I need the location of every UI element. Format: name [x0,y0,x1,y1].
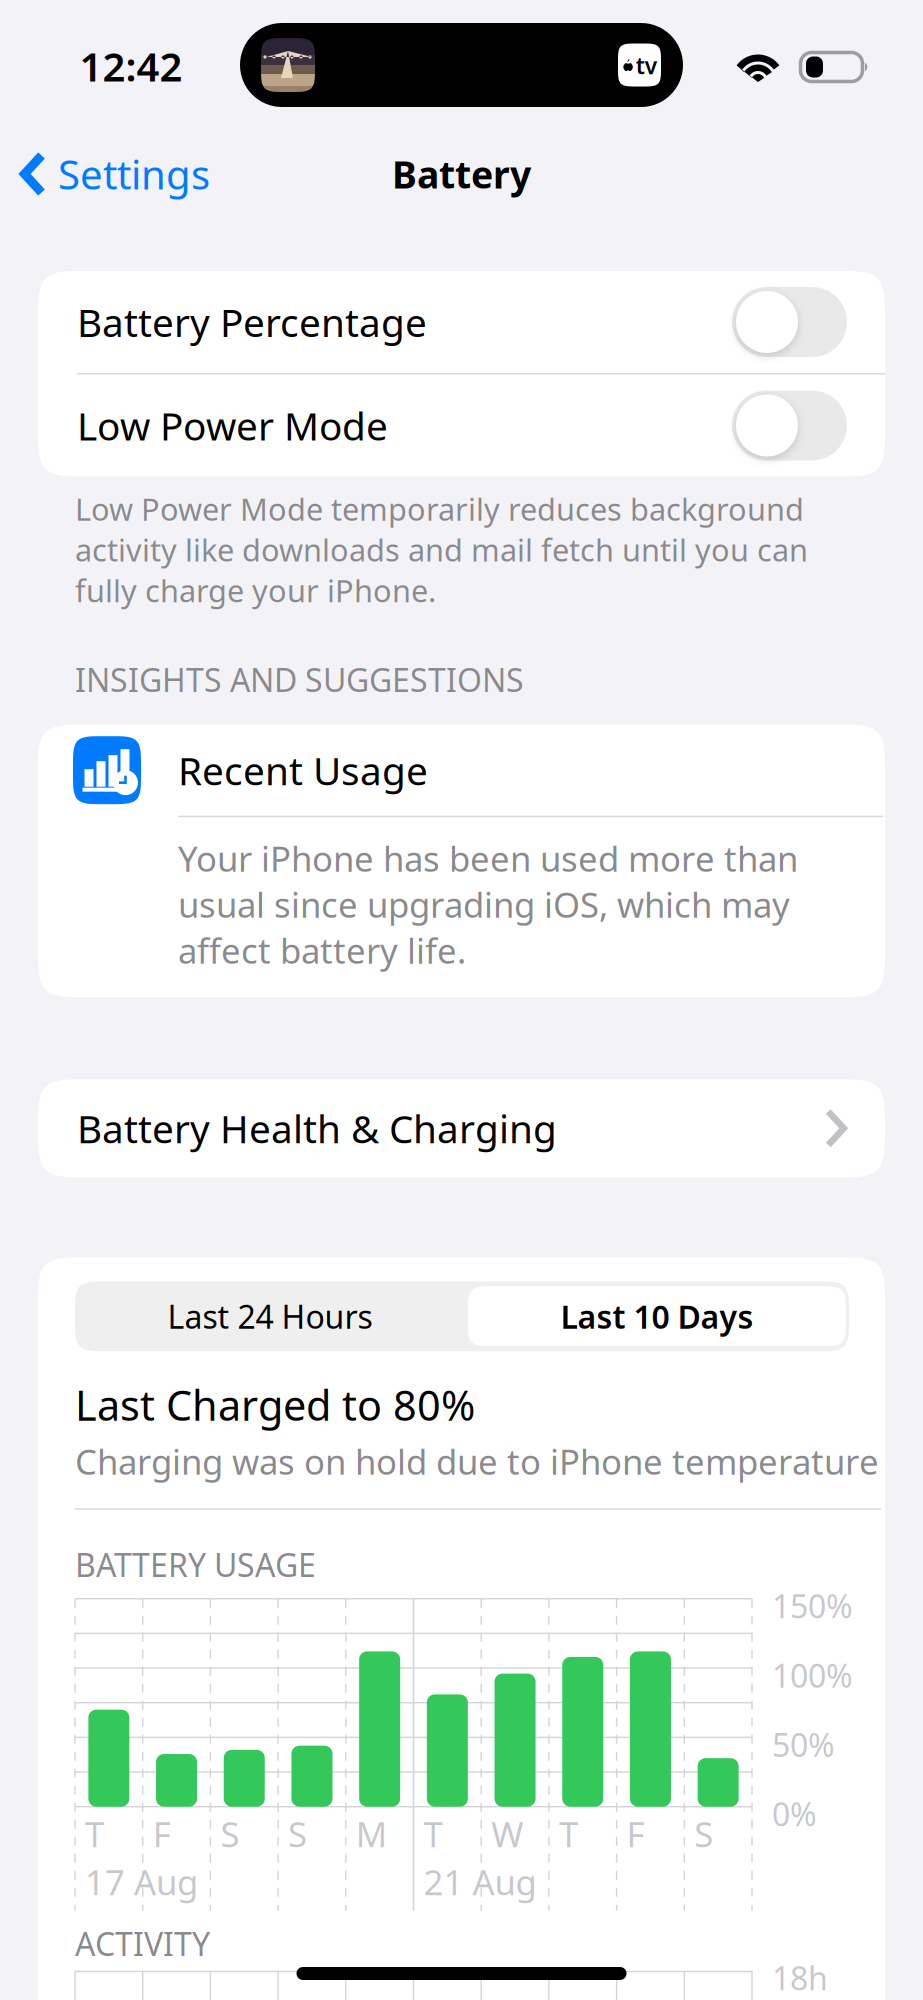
staticText: Low Power Mode temporarily reduces backg… [75,488,808,611]
staticText: BATTERY USAGE [75,1543,316,1586]
staticText: F [627,1811,645,1857]
staticText: INSIGHTS AND SUGGESTIONS [75,658,524,701]
staticText: F [153,1811,171,1857]
staticText: S [288,1811,307,1857]
button[interactable]: Battery Health & Charging [38,1079,885,1177]
staticText: Last 24 Hours [167,1295,372,1337]
staticText: Settings [58,147,210,200]
staticText: Low Power Mode [77,400,388,451]
staticText: Your iPhone has been used more than usua… [178,835,798,973]
staticText: 18h [772,1957,828,1999]
staticText: 21 Aug [423,1859,536,1905]
button[interactable]: Recent Usage [38,725,885,997]
staticText: Last Charged to 80% [75,1377,475,1432]
button[interactable]: Last 24 Hours [75,1281,465,1351]
staticText: ACTIVITY [75,1922,210,1965]
button[interactable]: Last 10 Days [465,1281,849,1351]
staticText: Battery Percentage [77,296,427,348]
staticText: Charging was on hold due to iPhone tempe… [75,1438,879,1484]
staticText: 17 Aug [85,1859,198,1905]
staticText: Recent Usage [178,744,428,796]
staticText: 150% [772,1585,853,1627]
button[interactable]: Settings [0,118,210,230]
staticText: M [356,1811,387,1857]
staticText: 100% [772,1654,853,1696]
staticText: T [85,1811,104,1857]
staticText: T [559,1811,578,1857]
staticText: S [220,1811,239,1857]
staticText: 50% [772,1723,835,1766]
staticText: 12:42 [79,39,182,92]
staticText: 0% [772,1793,817,1835]
button[interactable]: Low Power Mode [38,374,885,476]
staticText: Battery [392,149,531,199]
staticText: S [694,1811,713,1857]
staticText: Battery Health & Charging [77,1103,557,1154]
staticText: W [491,1811,523,1857]
staticText: Last 10 Days [560,1295,753,1337]
staticText: T [423,1811,442,1857]
staticText: tv [636,50,657,80]
button[interactable]: Battery Percentage [38,271,885,373]
